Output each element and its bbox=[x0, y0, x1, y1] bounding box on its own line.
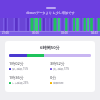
staticText: 3時52分 bbox=[50, 61, 65, 66]
staticText: 04:33 bbox=[91, 31, 98, 35]
button[interactable]: 21:00 bbox=[0, 18, 100, 36]
button[interactable]: 覚醒時間 bbox=[50, 75, 91, 84]
button[interactable]: 6時間50分 bbox=[5, 41, 95, 92]
staticText: レム睡眠 23% bbox=[12, 81, 29, 85]
staticText: 03:00 bbox=[61, 31, 68, 35]
button[interactable]: 浅い睡眠 57% bbox=[50, 61, 91, 71]
staticText: 0分 bbox=[50, 75, 57, 80]
button[interactable]: レム睡眠 23% bbox=[9, 75, 50, 85]
staticText: 浅い睡眠 57% bbox=[53, 67, 70, 71]
staticText: 覚醒時間 bbox=[53, 81, 64, 84]
staticText: 00:00 bbox=[32, 31, 39, 35]
button[interactable]: 深い睡眠 15% bbox=[9, 61, 50, 71]
staticText: 21:00 bbox=[2, 31, 9, 35]
staticText: 1時36分 bbox=[9, 75, 24, 80]
staticText: 1時02分 bbox=[9, 61, 24, 66]
staticText: 深い睡眠 15% bbox=[12, 67, 29, 71]
staticText: 6時間50分 bbox=[40, 45, 60, 51]
staticText: 前回のデータよりも少し増加です bbox=[26, 11, 75, 15]
